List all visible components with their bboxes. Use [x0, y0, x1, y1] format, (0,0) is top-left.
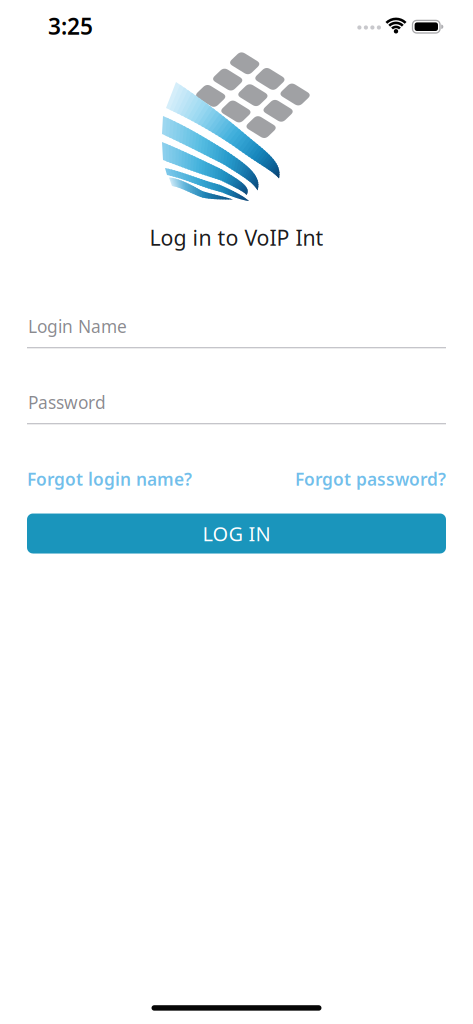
- button[interactable]: Forgot login name?: [27, 467, 192, 490]
- textField[interactable]: Login Name: [27, 315, 446, 348]
- staticText: Password: [28, 391, 106, 414]
- staticText: Log in to VoIP Int: [149, 223, 323, 252]
- staticText: Forgot password?: [295, 467, 446, 490]
- button[interactable]: LOG IN: [27, 513, 446, 553]
- textField[interactable]: Password: [27, 391, 446, 424]
- staticText: Forgot login name?: [27, 467, 192, 490]
- staticText: 3:25: [48, 11, 93, 41]
- button[interactable]: Forgot password?: [295, 467, 446, 490]
- staticText: LOG IN: [202, 520, 270, 547]
- staticText: Login Name: [28, 315, 127, 338]
